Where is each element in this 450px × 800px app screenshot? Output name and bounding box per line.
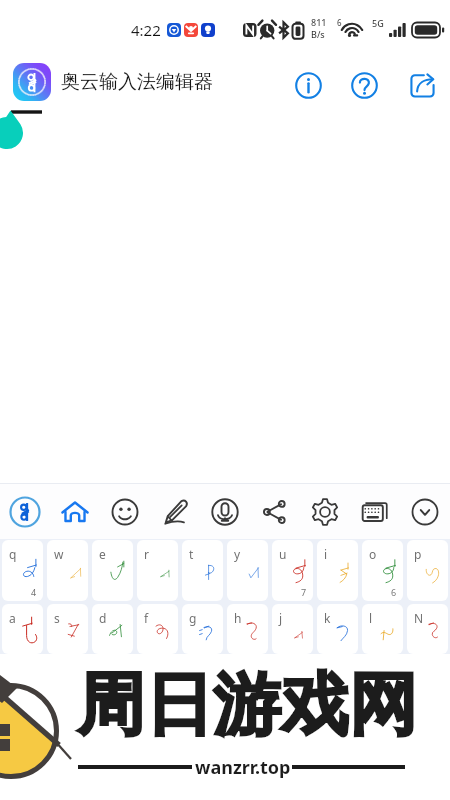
staticText: g (189, 610, 197, 626)
button[interactable]: Home (56, 493, 94, 531)
button[interactable]: Share (256, 493, 294, 531)
staticText: h (234, 610, 242, 626)
button[interactable]: r (137, 540, 178, 601)
staticText: 4:22 (131, 20, 161, 40)
button[interactable]: Collapse keyboard (406, 493, 444, 531)
button[interactable]: Keyboard layout (356, 493, 394, 531)
button[interactable]: w (47, 540, 88, 601)
staticText: 811 (311, 16, 327, 28)
staticText: e (99, 546, 106, 562)
button[interactable]: t (182, 540, 223, 601)
button[interactable]: d (92, 604, 133, 654)
staticText: d (99, 610, 107, 626)
button[interactable]: l (362, 604, 403, 654)
staticText: w (54, 546, 64, 562)
button[interactable]: a (2, 604, 43, 654)
staticText: a (9, 610, 16, 626)
staticText: 4 (31, 586, 37, 598)
staticText: wanzrr.top (195, 755, 291, 780)
button[interactable]: N (407, 604, 448, 654)
button[interactable]: o (362, 540, 403, 601)
staticText: 6 (391, 586, 397, 598)
staticText: 6 (337, 17, 342, 28)
button[interactable]: e (92, 540, 133, 601)
button[interactable]: Emoji (106, 493, 144, 531)
button[interactable]: h (227, 604, 268, 654)
staticText: o (369, 546, 377, 562)
staticText: j (279, 610, 283, 626)
button[interactable]: f (137, 604, 178, 654)
staticText: N (414, 610, 424, 626)
staticText: y (234, 546, 241, 562)
button[interactable]: u (272, 540, 313, 601)
staticText: k (324, 610, 331, 626)
button[interactable]: q (2, 540, 43, 601)
staticText: B/s (311, 28, 325, 40)
button[interactable]: Info (292, 69, 325, 102)
button[interactable]: p (407, 540, 448, 601)
button[interactable]: Settings (306, 493, 344, 531)
staticText: l (369, 610, 373, 626)
button[interactable]: Keyboard logo (6, 493, 44, 531)
button[interactable]: Voice input (206, 493, 244, 531)
button[interactable]: k (317, 604, 358, 654)
staticText: 奥云输入法编辑器 (61, 70, 213, 94)
staticText: i (324, 546, 328, 562)
staticText: 周日游戏网 (77, 663, 417, 749)
button[interactable]: j (272, 604, 313, 654)
button[interactable]: Help (348, 69, 381, 102)
button[interactable]: Handwriting (156, 493, 194, 531)
staticText: 7 (301, 586, 307, 598)
staticText: t (189, 546, 194, 562)
staticText: u (279, 546, 287, 562)
staticText: q (9, 546, 17, 562)
button[interactable]: i (317, 540, 358, 601)
staticText: r (144, 546, 149, 562)
button[interactable]: Share (406, 69, 439, 102)
button[interactable]: y (227, 540, 268, 601)
button[interactable]: s (47, 604, 88, 654)
staticText: s (54, 610, 60, 626)
staticText: p (414, 546, 422, 562)
staticText: f (144, 610, 149, 626)
staticText: 5G (372, 17, 384, 29)
button[interactable]: App icon (13, 63, 51, 101)
button[interactable]: g (182, 604, 223, 654)
